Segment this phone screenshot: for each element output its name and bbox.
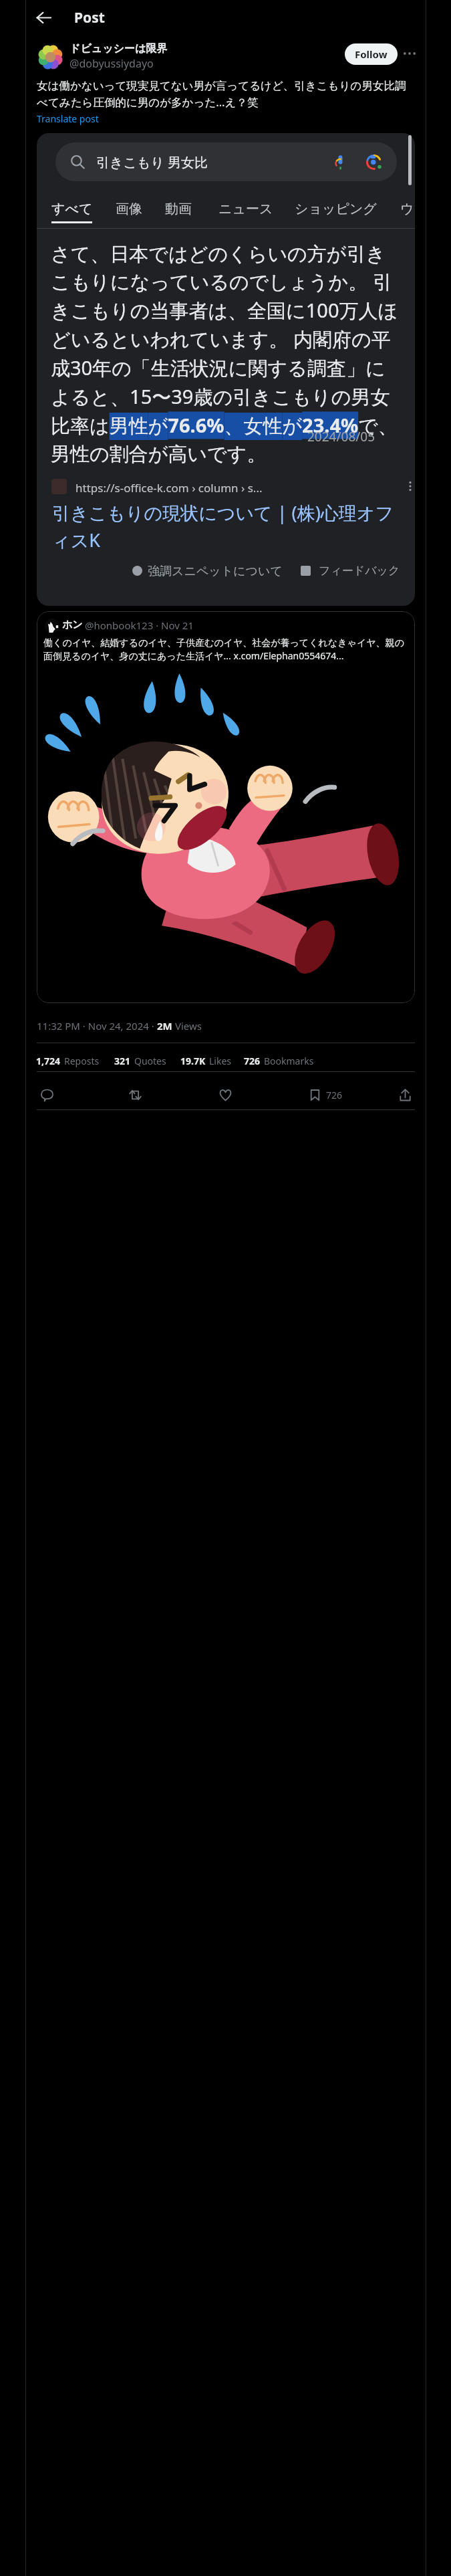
button[interactable]: Share <box>394 1083 416 1106</box>
staticText: 1,724 <box>36 1055 61 1067</box>
button[interactable]: 引きこもり 男女比 <box>70 142 382 181</box>
staticText: 画像 <box>116 201 142 217</box>
staticText: Quotes <box>134 1055 166 1067</box>
staticText: @dobyussiydayo <box>69 56 154 71</box>
button[interactable]: 動画 <box>165 201 192 217</box>
staticText: 19.7K <box>180 1055 206 1067</box>
staticText: ドビュッシーは限界 <box>69 42 168 56</box>
button[interactable]: Repost <box>124 1083 146 1106</box>
button[interactable]: すべて <box>51 201 93 217</box>
staticText: 2024/08/05 <box>307 428 375 445</box>
button[interactable]: ショッピング <box>295 201 377 217</box>
staticText: 726 <box>244 1055 261 1067</box>
staticText: Likes <box>209 1055 232 1067</box>
staticText: 726 <box>326 1089 343 1101</box>
staticText: Post <box>74 8 105 27</box>
staticText: 引きこもりの現状について | (株)心理オフィスK <box>52 500 402 552</box>
staticText: 2M <box>157 1019 175 1033</box>
staticText: 11:32 PM · Nov 24, 2024 · <box>37 1019 157 1033</box>
button[interactable]: フィードバック <box>319 564 400 578</box>
staticText: Bookmarks <box>264 1055 314 1067</box>
button[interactable]: 引きこもりの現状について | (株)心理オフィスK <box>52 500 402 552</box>
staticText: Views <box>175 1019 202 1033</box>
staticText: ホン <box>62 619 83 631</box>
button[interactable]: 321 <box>114 1055 166 1067</box>
staticText: 女は働かないって現実見てない男が言ってるけど、引きこもりの男女比調べてみたら圧倒… <box>37 79 415 110</box>
button[interactable]: Profile photo <box>37 44 63 70</box>
button[interactable]: 画像 <box>116 201 142 217</box>
button[interactable]: Reply <box>35 1083 58 1106</box>
staticText: https://s-office-k.com › column › s... <box>76 480 263 496</box>
staticText: 働くのイヤ、結婚するのイヤ、子供産むのイヤ、社会が養ってくれなきゃイヤ、親の面倒… <box>43 637 410 662</box>
button[interactable]: More options <box>400 44 419 63</box>
staticText: ウ <box>400 201 414 217</box>
button[interactable]: 726 <box>244 1055 314 1067</box>
button[interactable]: 1,724 <box>36 1055 100 1067</box>
button[interactable]: 19.7K <box>180 1055 232 1067</box>
button[interactable]: Bookmark <box>303 1083 326 1106</box>
button[interactable]: Translate post <box>37 112 99 125</box>
button[interactable]: ニュース <box>218 201 273 217</box>
button[interactable]: ウ <box>400 201 414 217</box>
staticText: 321 <box>114 1055 131 1067</box>
button[interactable]: 強調スニペットについて <box>148 564 283 579</box>
button[interactable]: Like <box>214 1083 237 1106</box>
staticText: 動画 <box>165 201 192 217</box>
staticText: すべて <box>51 201 93 217</box>
staticText: Reposts <box>64 1055 100 1067</box>
button[interactable]: Follow <box>345 43 398 65</box>
staticText: ニュース <box>218 201 273 217</box>
button[interactable] <box>37 611 415 1003</box>
staticText: @honbook123 · Nov 21 <box>85 619 194 632</box>
button[interactable]: More about this result <box>403 479 418 494</box>
staticText: 引きこもり 男女比 <box>96 153 333 171</box>
button[interactable]: Back <box>30 4 57 31</box>
staticText: ショッピング <box>295 201 377 217</box>
staticText: Follow <box>355 47 388 61</box>
staticText: さて、日本ではどのくらいの方が引きこもりになっているのでしょうか。 引きこもりの… <box>51 242 401 466</box>
